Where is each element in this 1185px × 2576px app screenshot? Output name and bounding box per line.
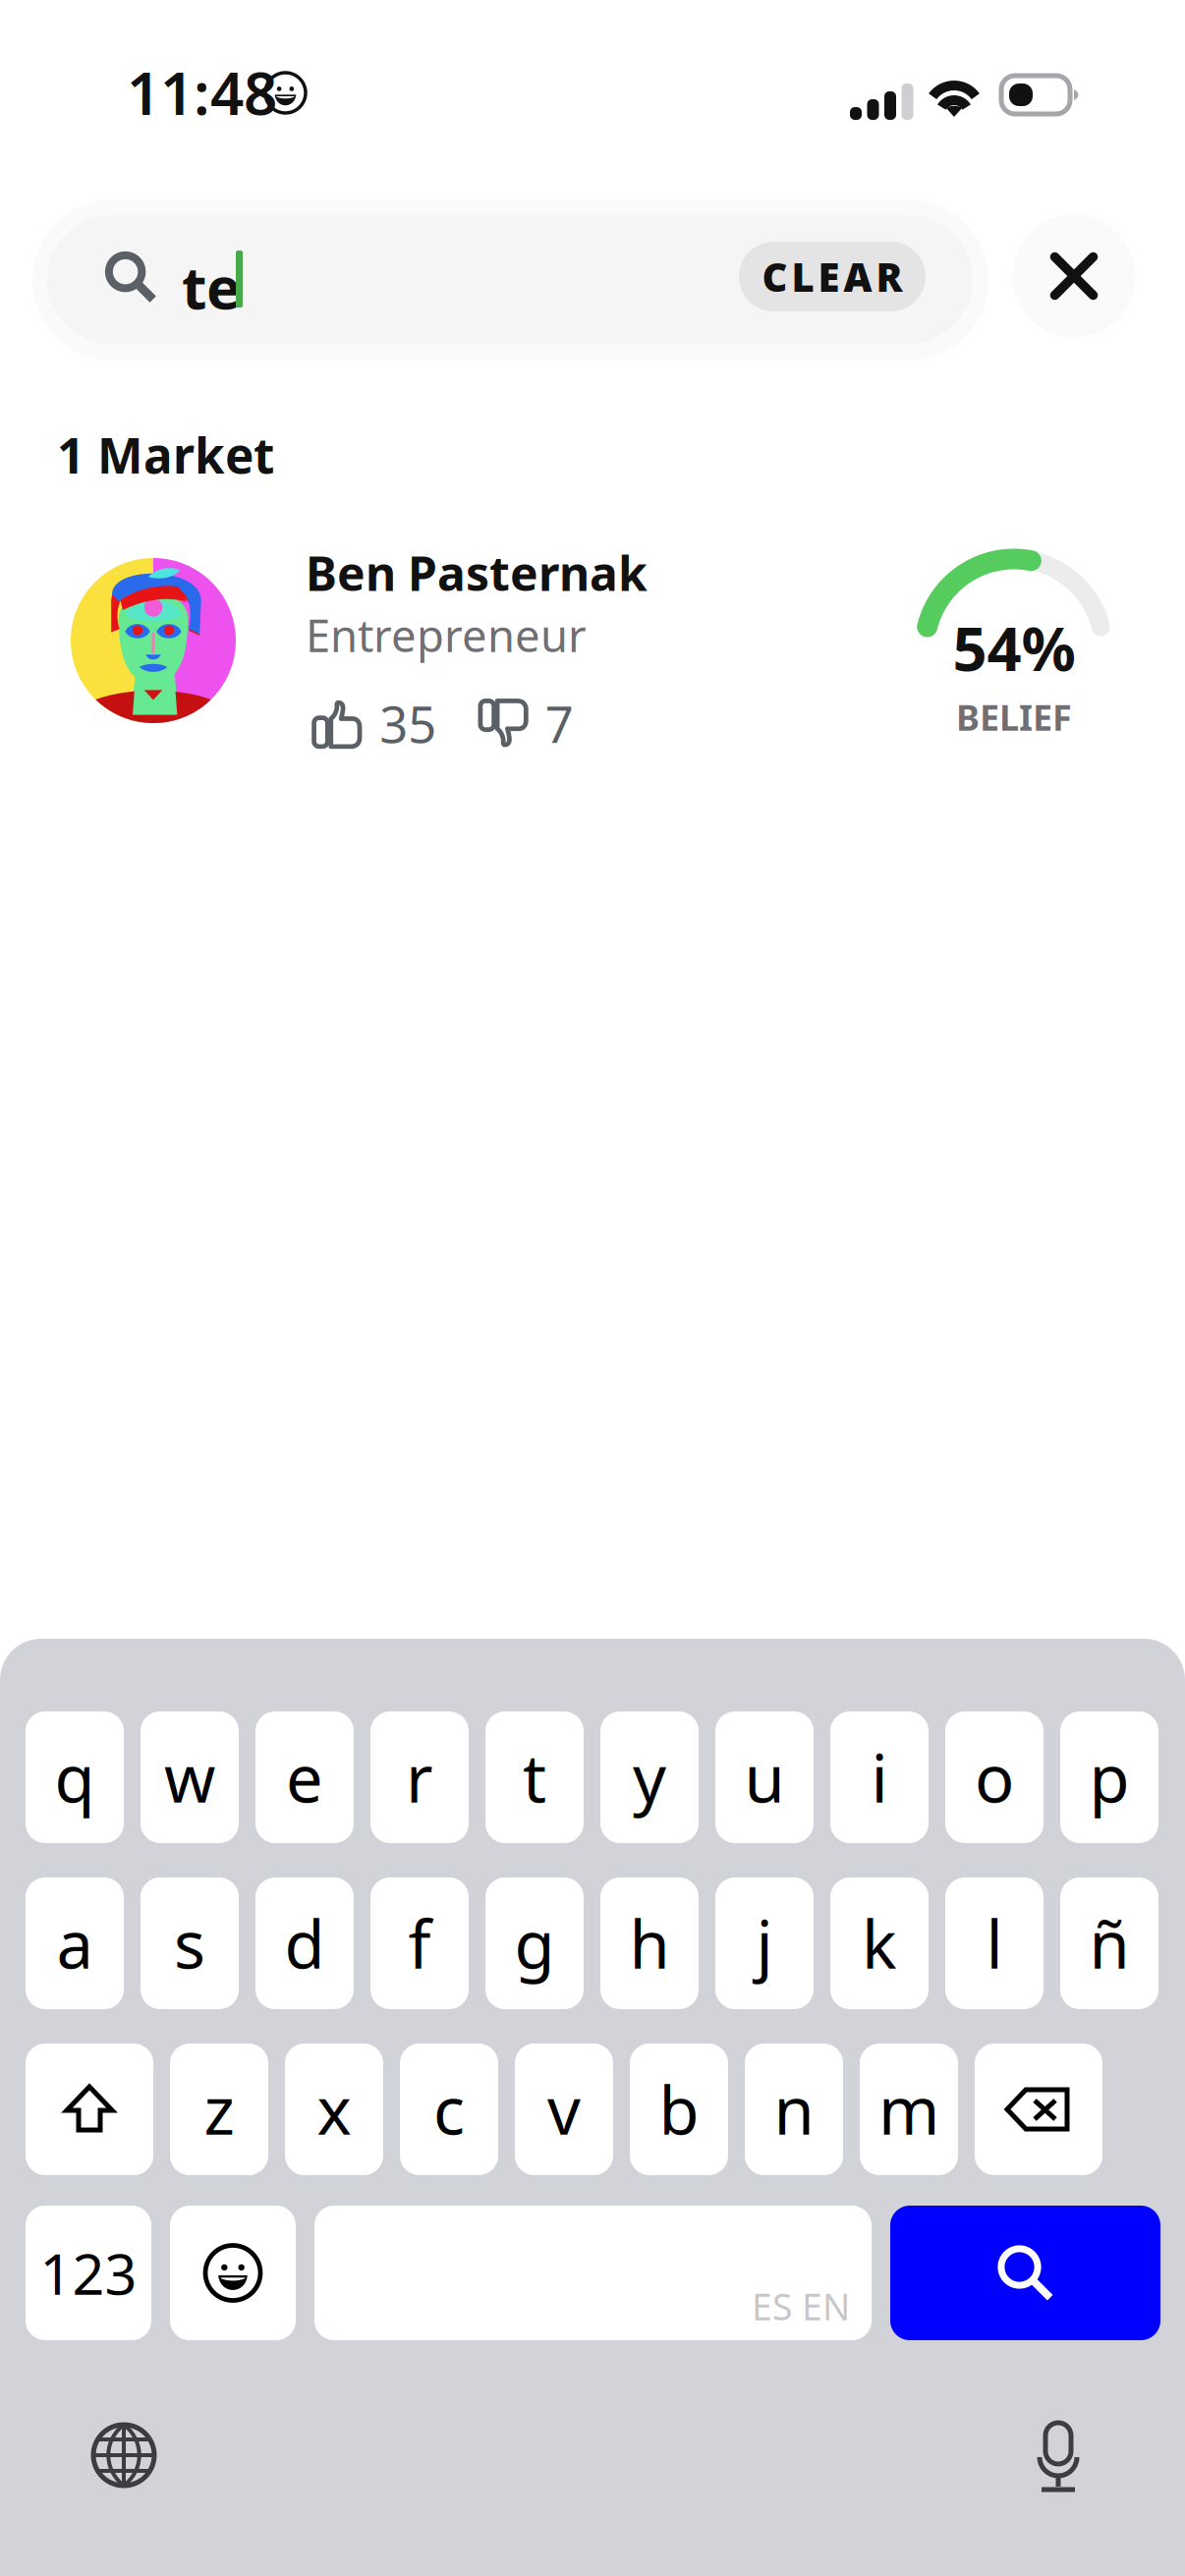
staticText: i bbox=[871, 1734, 888, 1821]
button[interactable]: Space bbox=[314, 2206, 872, 2340]
staticText: s bbox=[174, 1900, 205, 1987]
staticText: o bbox=[975, 1734, 1014, 1821]
staticText: ñ bbox=[1089, 1900, 1129, 1987]
button[interactable]: Ben Pasternak bbox=[0, 538, 1185, 755]
button[interactable]: r bbox=[370, 1711, 469, 1843]
staticText: z bbox=[204, 2066, 234, 2153]
button[interactable]: b bbox=[630, 2044, 728, 2175]
staticText: j bbox=[756, 1900, 773, 1987]
button[interactable]: te bbox=[32, 199, 988, 361]
staticText: 1 Market bbox=[57, 422, 274, 487]
button[interactable]: g bbox=[485, 1877, 584, 2009]
button[interactable]: Change keyboard bbox=[93, 2425, 154, 2486]
staticText: l bbox=[986, 1900, 1003, 1987]
button[interactable]: i bbox=[830, 1711, 929, 1843]
staticText: te bbox=[182, 249, 241, 325]
button[interactable]: z bbox=[170, 2044, 268, 2175]
button[interactable]: Close search bbox=[1009, 211, 1139, 341]
staticText: 35 bbox=[380, 691, 437, 757]
button[interactable]: Shift bbox=[26, 2044, 153, 2175]
staticText: t bbox=[523, 1734, 546, 1821]
button[interactable]: Dictate bbox=[1028, 2420, 1089, 2494]
button[interactable]: y bbox=[600, 1711, 699, 1843]
staticText: g bbox=[514, 1900, 555, 1987]
staticText: d bbox=[284, 1900, 325, 1987]
button[interactable]: ñ bbox=[1060, 1877, 1158, 2009]
button[interactable]: Delete bbox=[975, 2044, 1102, 2175]
staticText: v bbox=[547, 2066, 581, 2153]
staticText: x bbox=[317, 2066, 351, 2153]
button[interactable]: t bbox=[485, 1711, 584, 1843]
staticText: 11:48 bbox=[127, 53, 277, 131]
staticText: r bbox=[406, 1734, 433, 1821]
staticText: w bbox=[164, 1734, 215, 1821]
staticText: 7 bbox=[545, 691, 573, 757]
button[interactable]: o bbox=[945, 1711, 1044, 1843]
staticText: k bbox=[862, 1900, 897, 1987]
button[interactable]: w bbox=[141, 1711, 239, 1843]
staticText: m bbox=[878, 2066, 939, 2153]
staticText: Ben Pasternak bbox=[306, 541, 648, 604]
staticText: CLEAR bbox=[762, 250, 903, 303]
button[interactable]: v bbox=[515, 2044, 613, 2175]
button[interactable]: 123 bbox=[26, 2206, 151, 2340]
button[interactable]: j bbox=[715, 1877, 814, 2009]
button[interactable]: h bbox=[600, 1877, 699, 2009]
button[interactable]: e bbox=[255, 1711, 354, 1843]
staticText: e bbox=[286, 1734, 323, 1821]
staticText: y bbox=[633, 1734, 666, 1821]
staticText: b bbox=[659, 2066, 699, 2153]
button[interactable]: m bbox=[860, 2044, 958, 2175]
staticText: 123 bbox=[40, 2235, 137, 2310]
staticText: n bbox=[774, 2066, 814, 2153]
staticText: f bbox=[408, 1900, 431, 1987]
staticText: c bbox=[433, 2066, 465, 2153]
button[interactable]: x bbox=[285, 2044, 383, 2175]
staticText: a bbox=[56, 1900, 93, 1987]
staticText: q bbox=[55, 1734, 95, 1821]
staticText: p bbox=[1089, 1734, 1129, 1821]
staticText: Entrepreneur bbox=[306, 605, 587, 664]
staticText: u bbox=[744, 1734, 785, 1821]
staticText: BELIEF bbox=[956, 693, 1072, 740]
button[interactable]: f bbox=[370, 1877, 469, 2009]
button[interactable]: q bbox=[26, 1711, 124, 1843]
staticText: 54% bbox=[953, 608, 1075, 688]
button[interactable]: k bbox=[830, 1877, 929, 2009]
staticText: ES EN bbox=[752, 2282, 850, 2330]
button[interactable]: c bbox=[400, 2044, 498, 2175]
button[interactable]: u bbox=[715, 1711, 814, 1843]
button[interactable]: l bbox=[945, 1877, 1044, 2009]
button[interactable]: p bbox=[1060, 1711, 1158, 1843]
button[interactable]: Emoji bbox=[170, 2206, 296, 2340]
button[interactable]: a bbox=[26, 1877, 124, 2009]
staticText: h bbox=[629, 1900, 670, 1987]
button[interactable]: s bbox=[141, 1877, 239, 2009]
button[interactable]: n bbox=[745, 2044, 843, 2175]
button[interactable]: Search bbox=[890, 2206, 1160, 2340]
button[interactable]: d bbox=[255, 1877, 354, 2009]
